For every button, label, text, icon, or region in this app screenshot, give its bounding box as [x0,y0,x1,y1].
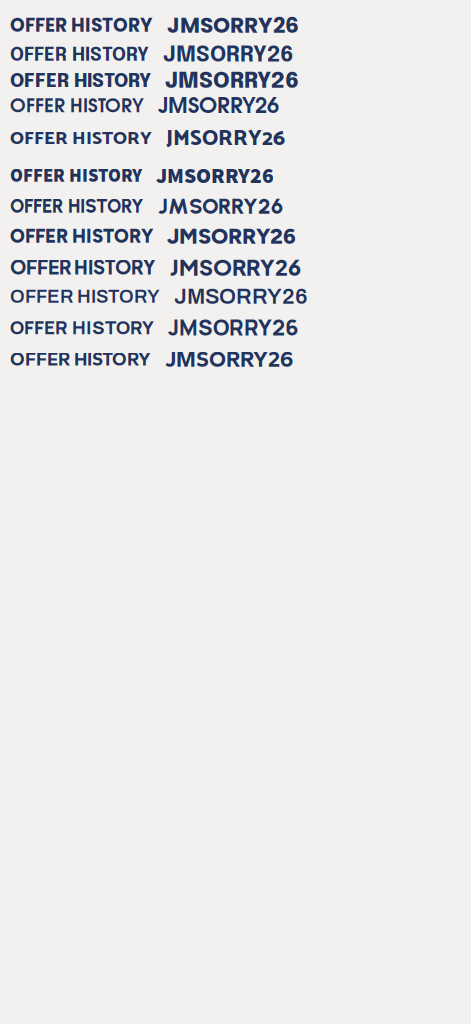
staticText: JMSORRY26 [170,253,301,281]
staticText: OFFER HISTORY [10,124,152,154]
staticText: OFFER HISTORY [10,286,160,307]
staticText: JMSORRY26 [166,121,285,157]
staticText: OFFER HISTORY [10,163,142,187]
staticText: JMSORRY26 [174,285,308,308]
staticText: JMSORRY26 [165,71,299,93]
staticText: JMSORRY26 [165,346,293,372]
staticText: OFFER HISTORY [10,225,153,247]
staticText: OFFER HISTORY [10,46,149,65]
staticText: JMSORRY26 [158,193,283,219]
staticText: OFFER HISTORY [10,348,151,370]
staticText: JMSORRY26 [163,44,294,67]
staticText: OFFER HISTORY [10,195,144,217]
staticText: OFFER HISTORY [10,98,144,116]
staticText: OFFER HISTORY [10,314,154,340]
staticText: JMSORRY26 [168,312,299,342]
staticText: JMSORRY26 [158,97,279,117]
staticText: OFFER HISTORY [10,12,153,38]
staticText: OFFER HISTORY [10,72,151,91]
staticText: JMSORRY26 [156,161,274,189]
staticText: OFFER HISTORY [10,255,156,279]
staticText: JMSORRY26 [167,10,299,40]
staticText: JMSORRY26 [167,223,296,249]
